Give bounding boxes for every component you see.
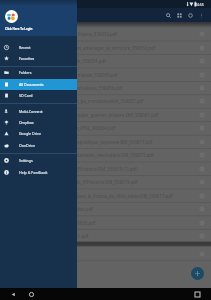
staticText: Chapitre_3_Histoire_Sur_La_Republique_re… xyxy=(17,139,153,145)
button[interactable]: More options xyxy=(197,123,206,132)
staticText: Revisions_des_Les_reformes_lumieres_revo… xyxy=(17,152,154,158)
staticText: Settings xyxy=(19,158,33,163)
button[interactable]: Analyse_du_document_558021.pdf xyxy=(0,229,211,242)
button[interactable]: Cours_complet_de_geographie_558054.pdf xyxy=(0,54,211,67)
button[interactable]: Mon_beau_cours_de_geographie.pdf xyxy=(0,202,211,215)
button[interactable]: More options xyxy=(197,177,206,186)
staticText: Help & Feedback xyxy=(19,170,48,175)
button[interactable]: Geographie_Les_espaces_du_monde_558055.p… xyxy=(0,68,211,81)
staticText: Recent xyxy=(19,45,31,50)
button[interactable]: Recent xyxy=(0,42,77,53)
button[interactable]: Recents xyxy=(193,288,202,300)
button[interactable]: More options xyxy=(197,83,206,92)
button[interactable]: Dropbox xyxy=(0,117,77,128)
button[interactable]: Home xyxy=(27,288,36,300)
button[interactable]: More options xyxy=(197,150,206,159)
staticText: Chapitre_5_Histoire_de_grands_H5historie… xyxy=(17,179,138,185)
button[interactable]: All Documents xyxy=(0,79,77,90)
staticText: Fiche_de_revision_histoire_558020.pdf xyxy=(17,220,96,226)
staticText: Chapitre_Comment_se_developper_guerres_b… xyxy=(17,112,159,118)
button[interactable]: Cours_sur_des_processus_pas_pa_mondialis… xyxy=(0,94,211,107)
staticText: Expose_sur_la_vie_politique_dans_la_Fran… xyxy=(17,193,173,199)
button[interactable]: Chapitre_Comment_se_developper_guerres_b… xyxy=(0,108,211,121)
button[interactable]: Grid view xyxy=(174,10,185,21)
button[interactable]: Chapitre_5_Histoire_grands_H5historie-DM… xyxy=(0,162,211,175)
button[interactable]: More options xyxy=(197,70,206,79)
button[interactable]: Sort xyxy=(185,10,196,21)
staticText: OneDrive xyxy=(19,143,35,148)
staticText: Geographie_Les_territoriales_France_5580… xyxy=(17,31,118,37)
staticText: Dropbox xyxy=(19,120,34,125)
button[interactable]: OneDrive xyxy=(0,140,77,151)
staticText: SD Card xyxy=(19,93,33,98)
staticText: Favorites xyxy=(19,56,35,61)
staticText: Analyse_du_document_558021.pdf xyxy=(17,233,89,239)
staticText: Cours_sur_des_processus_pas_pa_mondialis… xyxy=(17,98,144,104)
button[interactable]: More options xyxy=(197,218,206,227)
button[interactable]: More options xyxy=(197,56,206,65)
staticText: Chapitre_5_Histoire_grands_H5historie-DM… xyxy=(17,166,137,172)
button[interactable]: More options xyxy=(197,191,206,200)
button[interactable]: Documents recents.pdf xyxy=(0,247,211,260)
button[interactable]: More options xyxy=(197,110,206,119)
staticText: Mon_beau_cours_de_geographie.pdf xyxy=(17,206,93,212)
button[interactable]: Notions_de_cours_general_de_PHIL_993804.… xyxy=(0,121,211,134)
button[interactable]: Google Drive xyxy=(0,128,77,139)
button[interactable]: Fiche_de_revision_histoire_558020.pdf xyxy=(0,216,211,229)
button[interactable]: Histoire_Comment_amenagent_amenager_le_t… xyxy=(0,41,211,54)
button[interactable]: SD Card xyxy=(0,90,77,101)
button[interactable]: Settings xyxy=(0,155,77,166)
button[interactable]: Favorites xyxy=(0,53,77,64)
button[interactable]: Folders xyxy=(0,67,77,78)
button[interactable]: Mobi-Connect xyxy=(0,106,77,117)
staticText: Notions_de_cours_general_de_PHIL_993804.… xyxy=(17,125,116,131)
button[interactable]: More options xyxy=(197,29,206,38)
button[interactable]: More options xyxy=(197,137,206,146)
button[interactable]: More options xyxy=(196,10,207,21)
button[interactable]: More options xyxy=(197,96,206,105)
button[interactable]: Expose_sur_la_vie_politique_dans_la_Fran… xyxy=(0,189,211,202)
staticText: 14:55 xyxy=(195,2,204,7)
staticText: Google Drive xyxy=(19,131,41,136)
button[interactable]: Click Here To Login xyxy=(0,0,77,36)
staticText: Histoire_des_memoires_memorialisees_5580… xyxy=(17,85,123,91)
staticText: Histoire_Comment_amenagent_amenager_le_t… xyxy=(17,45,156,51)
button[interactable]: More options xyxy=(197,249,206,258)
button[interactable]: Revisions_des_Les_reformes_lumieres_revo… xyxy=(0,148,211,161)
staticText: Folders xyxy=(19,70,32,75)
button[interactable]: Chapitre_5_Histoire_de_grands_H5historie… xyxy=(0,175,211,188)
staticText: Click Here To Login xyxy=(5,27,33,31)
button[interactable]: More options xyxy=(197,204,206,213)
button[interactable]: Search xyxy=(163,10,174,21)
button[interactable]: Histoire_des_memoires_memorialisees_5580… xyxy=(0,81,211,94)
button[interactable]: Help & Feedback xyxy=(0,167,77,178)
button[interactable]: Geographie_Les_territoriales_France_5580… xyxy=(0,27,211,40)
staticText: Mobi-Connect xyxy=(19,109,43,114)
button[interactable]: More options xyxy=(197,231,206,240)
staticText: Geographie_Les_espaces_du_monde_558055.p… xyxy=(17,72,118,78)
staticText: Cours_complet_de_geographie_558054.pdf xyxy=(17,58,106,64)
button[interactable]: Chapitre_3_Histoire_Sur_La_Republique_re… xyxy=(0,135,211,148)
button[interactable]: Back xyxy=(9,288,18,300)
button[interactable]: More options xyxy=(197,43,206,52)
button[interactable]: More options xyxy=(197,164,206,173)
button[interactable]: Add xyxy=(191,267,204,280)
staticText: All Documents xyxy=(19,82,44,87)
